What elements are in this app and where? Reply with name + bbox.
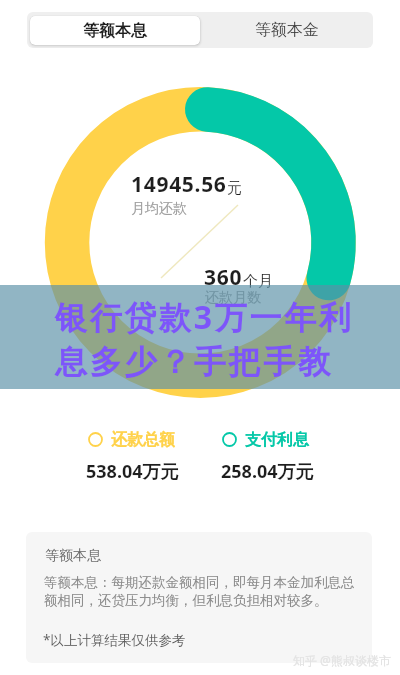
staticText: 支付利息 xyxy=(245,430,309,450)
button[interactable]: 银行贷款3万一年利 息多少？手把手教 xyxy=(0,285,400,389)
button[interactable]: 等额本息 xyxy=(26,532,372,663)
button[interactable] xyxy=(82,426,202,488)
staticText: 258.04万元 xyxy=(221,459,314,484)
staticText: 等额本金 xyxy=(255,20,319,40)
staticText: 538.04万元 xyxy=(86,459,179,484)
staticText: 银行贷款3万一年利 息多少？手把手教 xyxy=(55,295,354,382)
staticText: 还款月数 xyxy=(205,289,261,307)
button[interactable]: 等额本息 xyxy=(30,16,200,45)
staticText: 知乎 @熊叔谈楼市 xyxy=(293,652,391,668)
staticText: 等额本息：每期还款金额相同，即每月本金加利息总额相同，还贷压力均衡，但利息负担相… xyxy=(44,574,356,609)
button[interactable] xyxy=(216,426,336,488)
staticText: 14945.56 xyxy=(131,170,227,199)
staticText: 等额本息 xyxy=(83,21,147,41)
button[interactable]: 等额本金 xyxy=(200,12,373,48)
staticText: 360 xyxy=(204,263,243,292)
button[interactable]: 还款构成环形图 xyxy=(45,87,356,398)
staticText: 元 xyxy=(227,179,242,198)
staticText: *以上计算结果仅供参考 xyxy=(43,631,186,649)
staticText: 还款总额 xyxy=(111,430,175,450)
staticText: 月均还款 xyxy=(131,200,187,218)
staticText: 个月 xyxy=(243,272,273,291)
staticText: 等额本息 xyxy=(45,547,101,565)
